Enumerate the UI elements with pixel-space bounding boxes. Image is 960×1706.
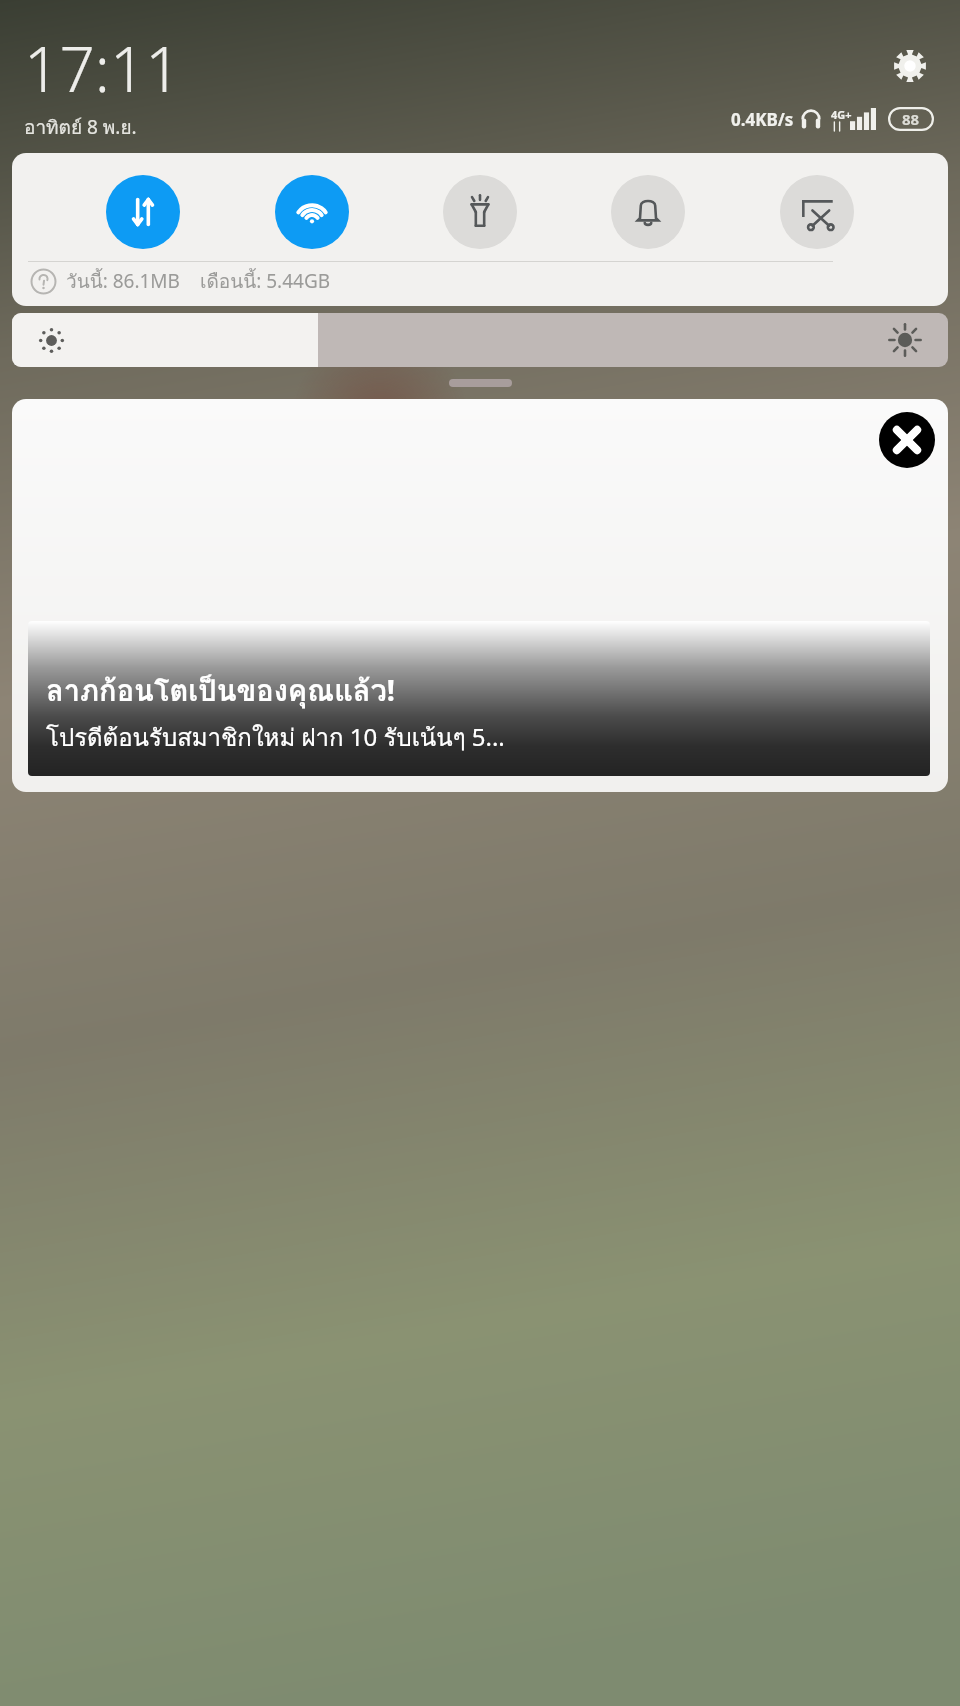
staticText: 17:11 [24, 26, 181, 110]
button[interactable]: Wi-Fi [275, 175, 349, 249]
staticText: 4G+ [831, 107, 852, 122]
staticText: 88 [902, 109, 920, 129]
button[interactable]: วันนี้: 86.1MB [30, 266, 331, 296]
staticText: เดือนนี้: 5.44GB [200, 266, 331, 296]
staticText: อาทิตย์ 8 พ.ย. [24, 112, 137, 142]
staticText: ลาภก้อนโตเป็นของคุณแล้ว! [46, 668, 396, 714]
staticText: โปรดีต้อนรับสมาชิกใหม่ ฝาก 10 รับเน้นๆ 5… [46, 718, 505, 756]
staticText: วันนี้: 86.1MB [66, 266, 180, 296]
button[interactable]: Screenshot [780, 175, 854, 249]
button[interactable]: Mobile data [106, 175, 180, 249]
button[interactable]: Flashlight [443, 175, 517, 249]
staticText: 0.4KB/s [731, 108, 794, 131]
button[interactable]: Settings [890, 46, 930, 86]
button[interactable]: Close [879, 412, 935, 468]
button[interactable] [449, 379, 512, 387]
button[interactable]: Close [12, 399, 948, 792]
button[interactable]: Ring mode [611, 175, 685, 249]
button[interactable]: Brightness [12, 313, 948, 367]
